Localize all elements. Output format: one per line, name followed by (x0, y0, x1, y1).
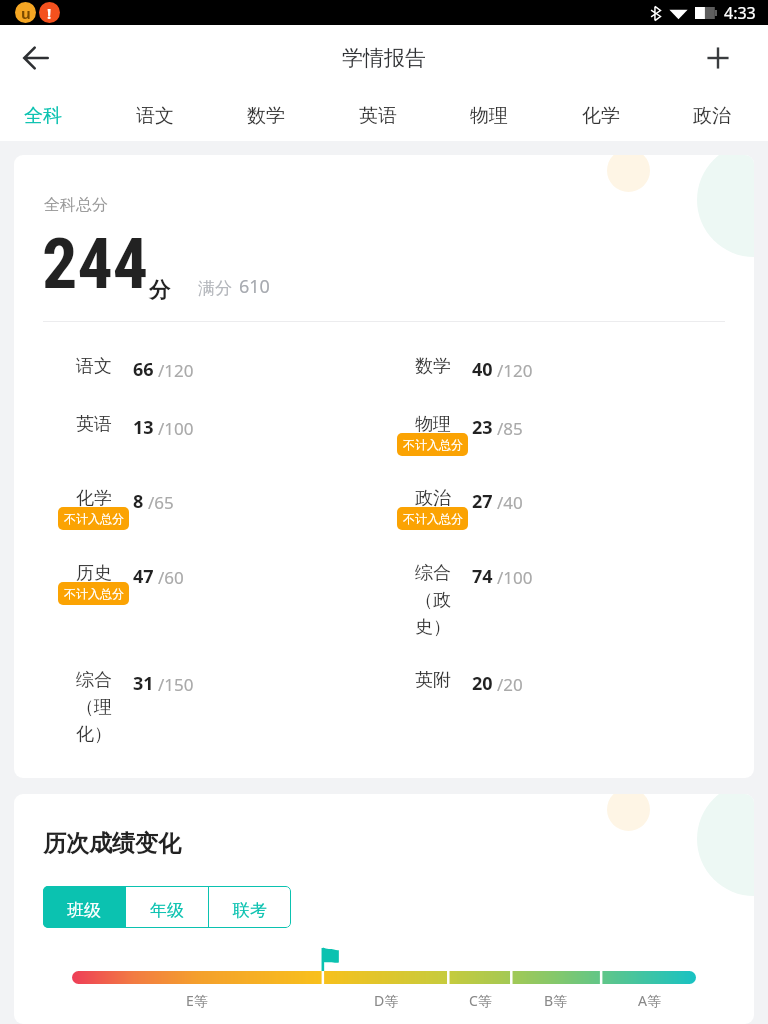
staticText: 数学 (415, 355, 451, 378)
staticText: /120 (497, 359, 533, 382)
staticText: 不计入总分 (403, 437, 463, 452)
staticText: 66 (133, 357, 154, 382)
staticText: 化学 (76, 487, 112, 510)
staticText: 数学 (247, 104, 285, 128)
staticText: 610 (239, 274, 270, 299)
staticText: /100 (158, 417, 194, 440)
button[interactable]: 联考 (209, 886, 291, 928)
staticText: C等 (469, 991, 492, 1010)
staticText: 不计入总分 (403, 511, 463, 526)
staticText: A等 (638, 991, 661, 1010)
button[interactable]: 班级 (43, 886, 125, 928)
button[interactable]: 英语 (322, 91, 433, 141)
button[interactable]: 年级 (126, 886, 208, 928)
button[interactable]: 政治 (656, 91, 767, 141)
staticText: 20 (472, 671, 493, 696)
staticText: 13 (133, 415, 154, 440)
staticText: 历史 (76, 562, 112, 585)
staticText: 不计入总分 (64, 511, 124, 526)
staticText: /120 (158, 359, 194, 382)
staticText: ! (47, 3, 52, 23)
staticText: /150 (158, 673, 194, 696)
staticText: 分 (149, 277, 170, 303)
staticText: /100 (497, 566, 533, 589)
staticText: 47 (133, 564, 154, 589)
staticText: 政治 (415, 487, 451, 510)
staticText: 联考 (233, 900, 267, 921)
button[interactable]: 化学 (545, 91, 656, 141)
staticText: 全科总分 (44, 195, 108, 215)
staticText: 23 (472, 415, 493, 440)
staticText: 语文 (136, 104, 174, 128)
staticText: 学情报告 (342, 45, 426, 71)
staticText: D等 (374, 991, 399, 1010)
staticText: 全科 (24, 104, 62, 128)
staticText: 历次成绩变化 (43, 829, 181, 858)
staticText: 政治 (693, 104, 731, 128)
staticText: 4:33 (724, 2, 756, 24)
staticText: /40 (497, 491, 523, 514)
staticText: 物理 (415, 413, 451, 436)
staticText: 物理 (470, 104, 508, 128)
staticText: 年级 (150, 900, 184, 921)
button[interactable]: Back (12, 34, 60, 82)
staticText: 不计入总分 (64, 586, 124, 601)
staticText: 27 (472, 489, 493, 514)
staticText: E等 (186, 991, 208, 1010)
staticText: /65 (148, 491, 174, 514)
button[interactable]: 数学 (210, 91, 321, 141)
staticText: 8 (133, 489, 144, 514)
staticText: 英语 (76, 413, 112, 436)
staticText: 英语 (359, 104, 397, 128)
staticText: 综合 （政 史） (415, 562, 451, 639)
staticText: 英附 (415, 669, 451, 692)
staticText: 40 (472, 357, 493, 382)
button[interactable]: Add (694, 34, 742, 82)
staticText: u (21, 3, 31, 23)
button[interactable]: 全科 (0, 91, 98, 141)
button[interactable]: 物理 (433, 91, 544, 141)
staticText: 化学 (582, 104, 620, 128)
staticText: 31 (133, 671, 154, 696)
staticText: B等 (544, 991, 568, 1010)
staticText: 244 (42, 223, 149, 305)
staticText: /20 (497, 673, 523, 696)
staticText: /85 (497, 417, 523, 440)
staticText: /60 (158, 566, 184, 589)
staticText: 满分 (198, 278, 232, 299)
staticText: 班级 (67, 900, 101, 921)
staticText: 综合 （理 化） (76, 669, 112, 746)
staticText: 语文 (76, 355, 112, 378)
button[interactable]: 语文 (99, 91, 210, 141)
staticText: 74 (472, 564, 493, 589)
